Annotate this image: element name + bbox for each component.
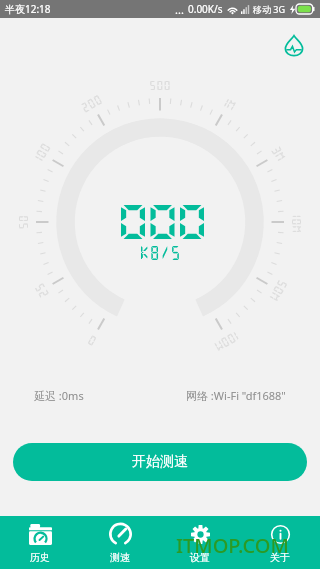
staticText: ITMOP.COM (176, 532, 289, 559)
staticText: 网络 :Wi-Fi "df1688" (186, 388, 286, 403)
staticText: 关于 (270, 551, 290, 564)
button[interactable]: 关于 (240, 516, 320, 569)
staticText: 半夜12:18 (5, 2, 51, 16)
staticText: 测速 (110, 551, 130, 564)
button[interactable]: Network monitor (281, 33, 307, 59)
staticText: 移动 3G (253, 3, 286, 15)
button[interactable]: 测速 (80, 516, 160, 569)
staticText: 延迟 :0ms (34, 388, 84, 403)
button[interactable]: 设置 (160, 516, 240, 569)
staticText: 历史 (30, 551, 50, 564)
staticText: 设置 (190, 551, 210, 564)
staticText: 开始测速 (132, 453, 188, 471)
staticText: 0.00K/s (188, 2, 223, 16)
staticText: ... (175, 2, 184, 17)
staticText: KB/S (139, 244, 181, 261)
button[interactable]: 历史 (0, 516, 80, 569)
button[interactable]: 开始测速 (13, 443, 307, 481)
